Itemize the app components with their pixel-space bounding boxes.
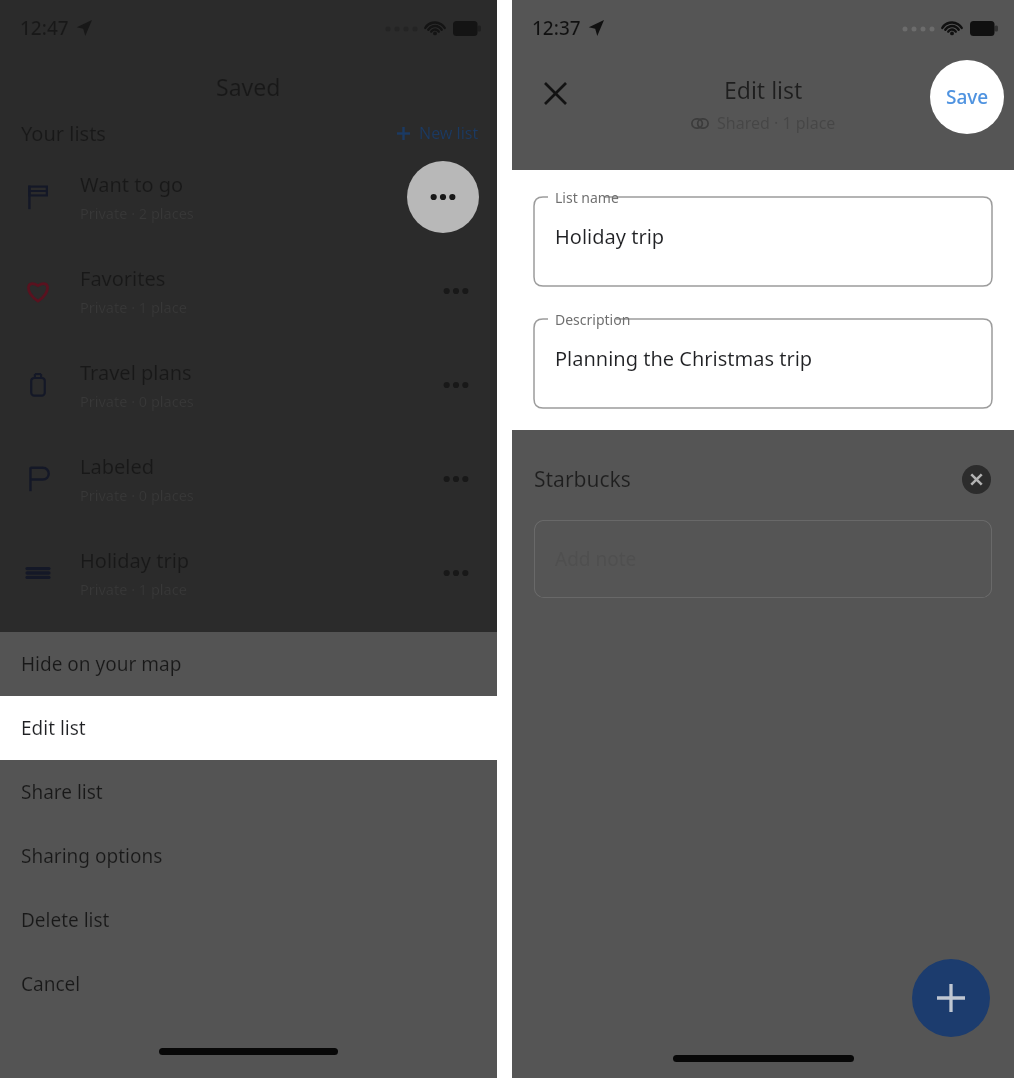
staticText: Cancel	[21, 971, 81, 997]
button[interactable]: Sharing options	[0, 824, 497, 888]
staticText: List name	[555, 188, 619, 207]
staticText: Labeled	[80, 453, 155, 480]
button[interactable]: Share list	[0, 760, 497, 824]
staticText: Private · 0 places	[80, 391, 194, 411]
staticText: 12:37	[532, 15, 581, 41]
staticText: Holiday trip	[555, 223, 665, 250]
button[interactable]: Add place	[912, 959, 990, 1037]
button[interactable]: Cancel	[0, 952, 497, 1016]
staticText: Share list	[21, 779, 103, 805]
button[interactable]: Add note	[534, 520, 992, 598]
staticText: 12:47	[20, 15, 69, 41]
staticText: Sharing options	[21, 843, 163, 869]
button[interactable]: New list	[396, 122, 479, 144]
staticText: Travel plans	[80, 359, 192, 386]
staticText: Private · 1 place	[80, 579, 187, 599]
staticText: Your lists	[21, 120, 106, 147]
button[interactable]: Save	[930, 60, 1004, 134]
staticText: Holiday trip	[80, 547, 190, 574]
staticText: Saved	[216, 71, 281, 102]
staticText: Description	[555, 310, 631, 329]
button[interactable]: Close	[532, 70, 578, 116]
staticText: Favorites	[80, 265, 166, 292]
button[interactable]: Delete list	[0, 888, 497, 952]
staticText: Private · 0 places	[80, 485, 194, 505]
staticText: Save	[946, 84, 989, 110]
staticText: New list	[419, 122, 479, 144]
button[interactable]: More options for Labeled	[433, 456, 479, 502]
staticText: Planning the Christmas trip	[555, 345, 813, 372]
button[interactable]: More options for Favorites	[433, 268, 479, 314]
button[interactable]: More options for Want to go	[407, 161, 479, 233]
staticText: Edit list	[21, 715, 86, 741]
staticText: Edit list	[724, 74, 803, 105]
button[interactable]: Remove Starbucks	[960, 463, 992, 495]
button[interactable]: Edit list	[0, 696, 497, 760]
button[interactable]: Favorites	[0, 244, 497, 338]
staticText: Shared · 1 place	[717, 112, 836, 134]
staticText: Delete list	[21, 907, 110, 933]
button[interactable]: More options for Travel plans	[433, 362, 479, 408]
staticText: Private · 2 places	[80, 203, 194, 223]
staticText: Private · 1 place	[80, 297, 187, 317]
button[interactable]: More options for Holiday trip	[433, 550, 479, 596]
button[interactable]: Want to go	[0, 150, 497, 244]
button[interactable]: Hide on your map	[0, 632, 497, 696]
staticText: Hide on your map	[21, 651, 182, 677]
staticText: Starbucks	[534, 465, 631, 494]
staticText: Want to go	[80, 171, 184, 198]
